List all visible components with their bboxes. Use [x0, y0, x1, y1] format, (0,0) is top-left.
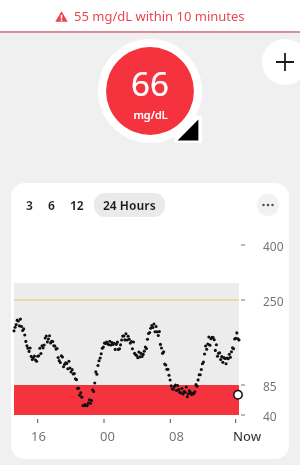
staticText: 12 [70, 197, 84, 213]
button[interactable]: 6 [48, 197, 55, 213]
staticText: 08 [169, 427, 184, 445]
staticText: 400 [263, 238, 284, 254]
staticText: 00 [100, 427, 115, 445]
button[interactable]: 12 [70, 197, 84, 213]
staticText: 24 Hours [103, 197, 156, 213]
button[interactable]: Add entry [262, 39, 300, 85]
staticText: 16 [31, 427, 46, 445]
staticText: Now [233, 427, 262, 445]
staticText: 6 [48, 197, 55, 213]
staticText: 3 [26, 197, 33, 213]
staticText: 40 [263, 408, 277, 424]
staticText: 250 [263, 293, 284, 309]
staticText: 66 [131, 61, 169, 106]
button[interactable]: 55 mg/dL within 10 minutes [0, 0, 300, 31]
button[interactable]: 24 Hours [103, 197, 156, 213]
staticText: 55 mg/dL within 10 minutes [74, 7, 245, 25]
button[interactable]: Current glucose 66 mg per deciliter, fal… [98, 39, 202, 143]
staticText: mg/dL [133, 107, 168, 122]
button[interactable]: 3 [26, 197, 33, 213]
staticText: 85 [263, 378, 277, 394]
button[interactable]: More options [257, 194, 279, 216]
